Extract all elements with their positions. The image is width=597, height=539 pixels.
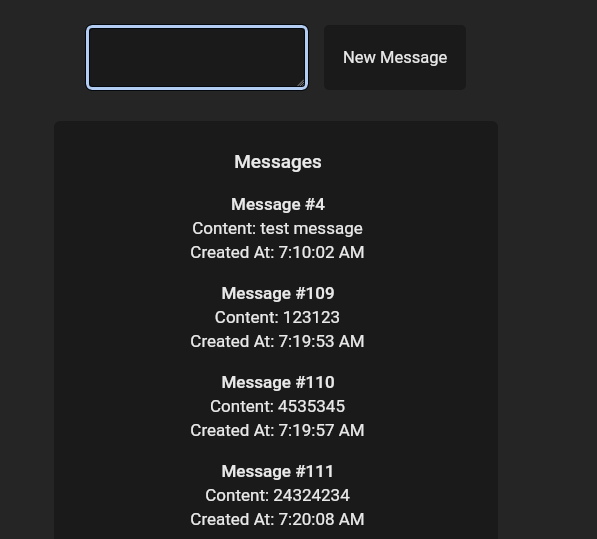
button[interactable]: Message #111	[57, 458, 498, 530]
staticText: Message #111	[221, 458, 335, 482]
staticText: Content: 4535345 Created At: 7:19:57 AM	[190, 393, 365, 441]
staticText: Content: 123123 Created At: 7:19:53 AM	[190, 304, 365, 352]
staticText: Messages	[234, 147, 322, 173]
button[interactable]: Message #110	[57, 369, 498, 441]
staticText: Content: test message Created At: 7:10:0…	[190, 215, 365, 263]
button[interactable]: Message #4	[57, 191, 498, 263]
button[interactable]: New Message	[324, 25, 466, 90]
staticText: Message #110	[221, 369, 335, 393]
staticText: Message #109	[221, 280, 335, 304]
staticText: New Message	[343, 48, 448, 67]
staticText: Content: 24324234 Created At: 7:20:08 AM	[190, 482, 365, 530]
button[interactable]: Message #109	[57, 280, 498, 352]
staticText: Message #4	[231, 191, 325, 215]
button[interactable]: Message text field	[85, 24, 309, 91]
